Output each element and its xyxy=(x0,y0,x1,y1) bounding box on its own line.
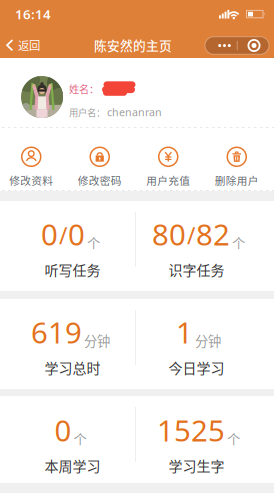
staticText: 删除用户 xyxy=(215,172,259,188)
staticText: 0 xyxy=(68,214,85,253)
staticText: 0 xyxy=(54,410,71,449)
staticText: 1 xyxy=(176,312,193,351)
staticText: 返回 xyxy=(18,37,40,53)
staticText: 分钟 xyxy=(195,331,221,350)
staticText: 修改密码 xyxy=(78,172,122,188)
staticText: 0 xyxy=(41,214,58,253)
staticText: 用户充值 xyxy=(146,172,190,188)
button[interactable]: 1 xyxy=(137,299,274,389)
staticText: 听写任务 xyxy=(44,259,100,280)
staticText: 今日学习 xyxy=(168,357,224,378)
staticText: 个 xyxy=(87,233,100,252)
staticText: 1525 xyxy=(157,410,225,449)
button[interactable]: 0 xyxy=(0,396,137,483)
button[interactable]: 用户充值 xyxy=(134,139,202,179)
staticText: / xyxy=(187,220,195,250)
staticText: 陈安然的主页 xyxy=(94,36,172,54)
staticText: 姓名： xyxy=(69,82,99,96)
staticText: chenanran xyxy=(107,105,162,119)
staticText: 学习总时 xyxy=(44,357,100,378)
button[interactable]: 80 xyxy=(137,201,274,291)
button[interactable]: 修改密码 xyxy=(65,139,134,179)
staticText: 分钟 xyxy=(84,331,110,350)
staticText: 学习生字 xyxy=(168,455,224,476)
button[interactable]: 修改资料 xyxy=(0,139,65,179)
button[interactable]: 删除用户 xyxy=(202,139,271,179)
staticText: 80 xyxy=(152,214,186,253)
button[interactable]: 0 xyxy=(0,201,137,291)
staticText: 82 xyxy=(196,214,230,253)
staticText: 用户名： xyxy=(69,105,105,119)
button[interactable]: 返回 xyxy=(0,35,40,51)
staticText: 619 xyxy=(31,312,82,351)
staticText: 个 xyxy=(232,233,245,252)
staticText: 修改资料 xyxy=(9,172,53,188)
button[interactable]: 1525 xyxy=(137,396,274,483)
staticText: 个 xyxy=(73,429,86,448)
staticText: 本周学习 xyxy=(44,455,100,476)
button[interactable] xyxy=(205,34,274,52)
staticText: 16:14 xyxy=(15,5,51,23)
button[interactable]: 619 xyxy=(0,299,137,389)
staticText: 个 xyxy=(227,429,240,448)
staticText: 识字任务 xyxy=(168,259,224,280)
staticText: / xyxy=(59,220,67,250)
